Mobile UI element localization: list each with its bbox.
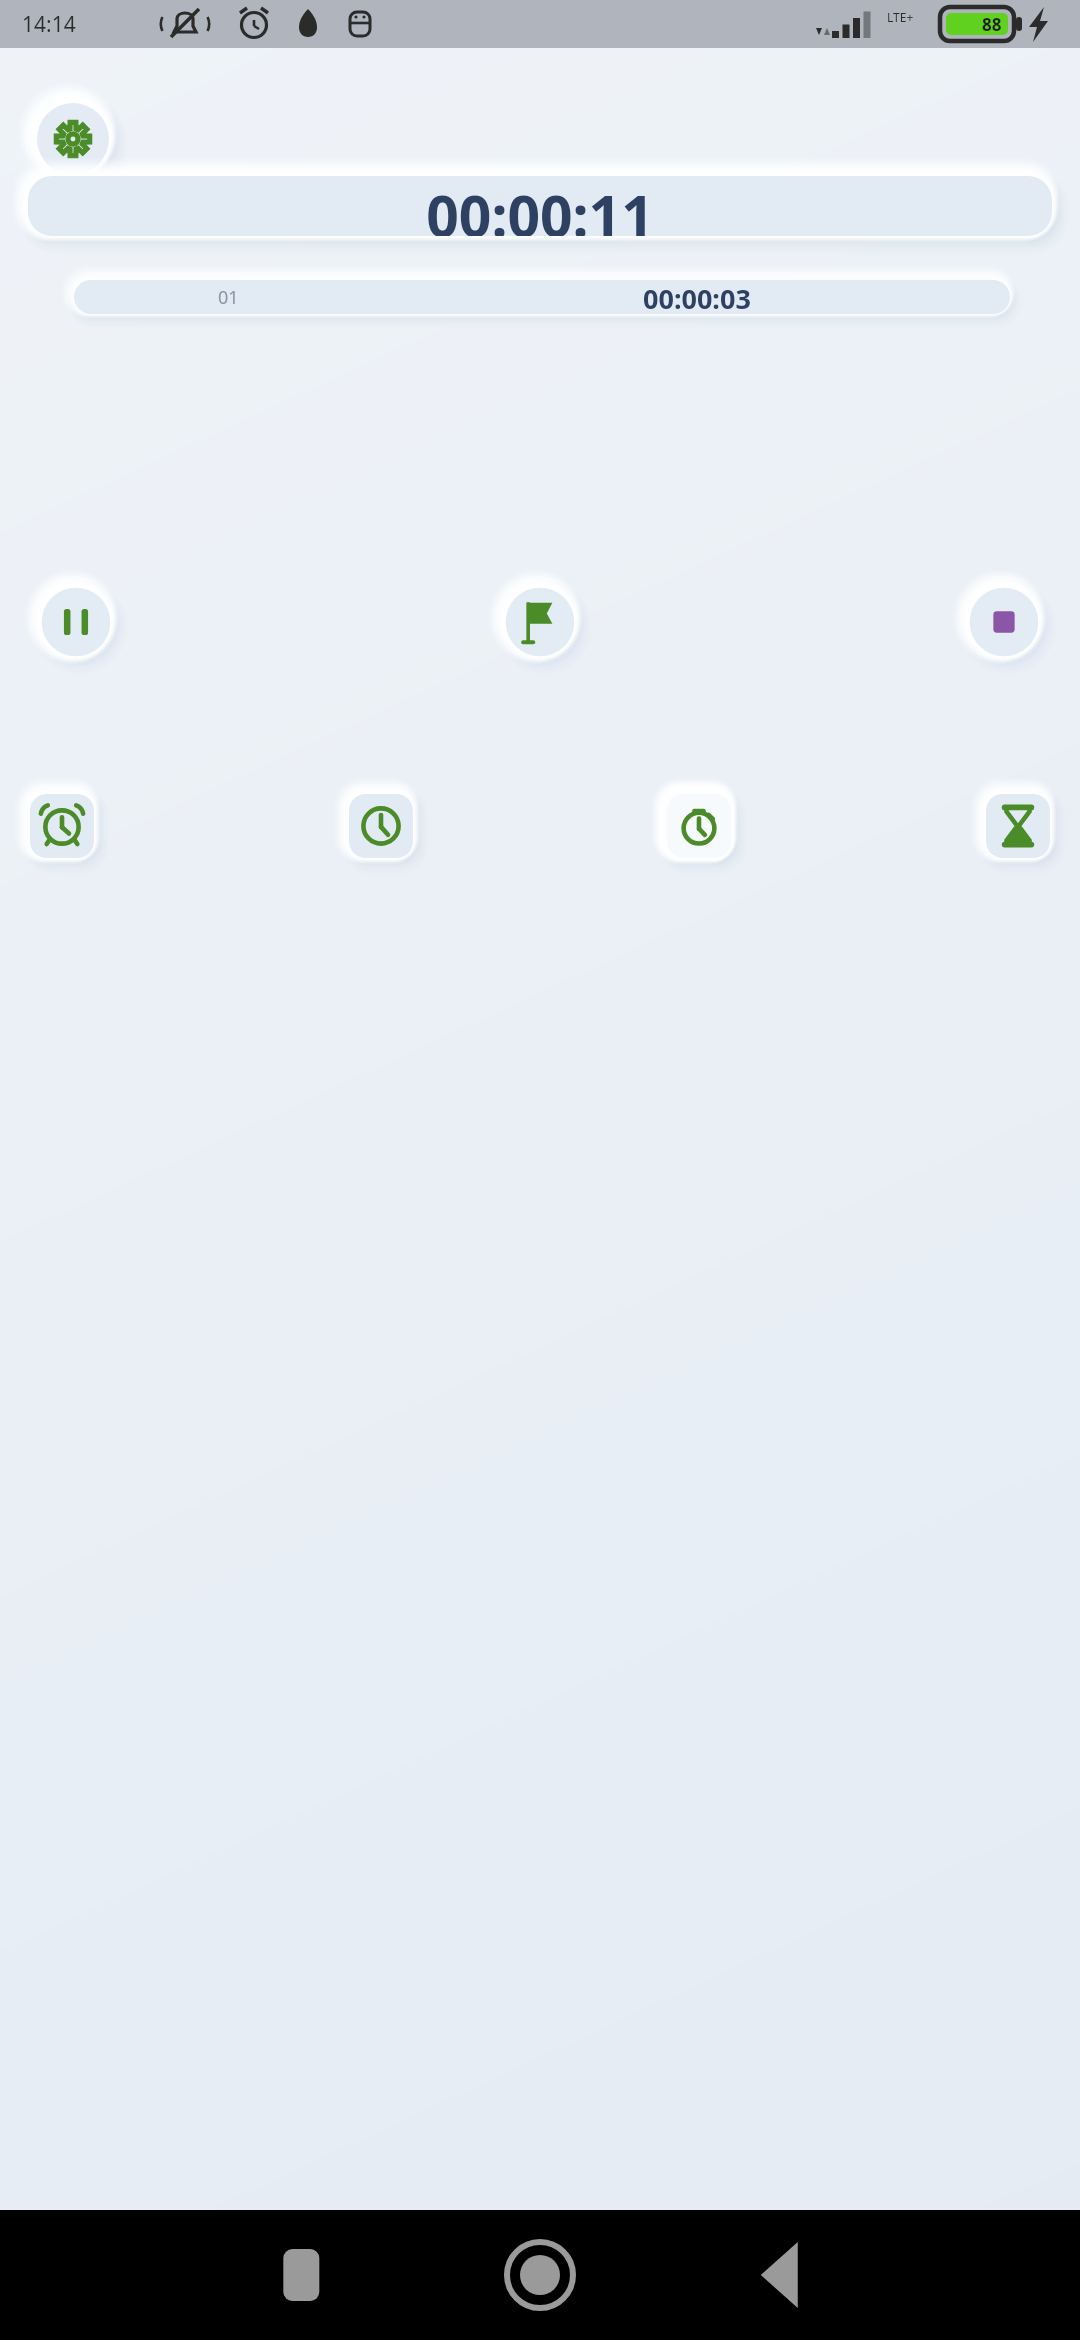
button[interactable]: Lap [496, 578, 584, 666]
button[interactable]: Pause [32, 578, 120, 666]
staticText: LTE+ [887, 9, 914, 25]
button[interactable]: World clock [341, 786, 421, 866]
button[interactable]: Alarm [22, 786, 102, 866]
button[interactable]: Settings [28, 94, 118, 184]
button[interactable]: 01 [74, 280, 1010, 314]
button[interactable]: Stopwatch [659, 786, 739, 866]
staticText: 88 [982, 13, 1002, 36]
button[interactable]: Timer [978, 786, 1058, 866]
staticText: 00:00:11 [426, 176, 654, 236]
button[interactable]: Stop [960, 578, 1048, 666]
staticText: 14:14 [22, 10, 76, 39]
staticText: 00:00:03 [643, 280, 751, 314]
staticText: 01 [218, 285, 239, 310]
